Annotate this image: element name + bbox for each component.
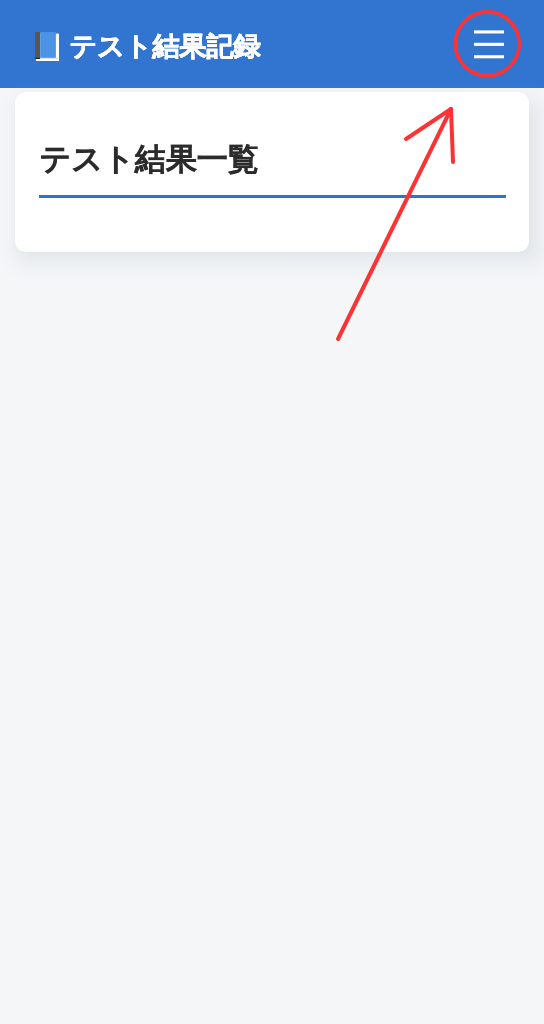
staticText: テスト結果一覧 xyxy=(39,140,259,179)
button[interactable]: Menu xyxy=(467,22,511,66)
staticText: テスト結果一覧 xyxy=(39,140,259,179)
staticText: テスト結果記録 xyxy=(69,30,260,64)
staticText: テスト結果記録 xyxy=(69,30,260,64)
